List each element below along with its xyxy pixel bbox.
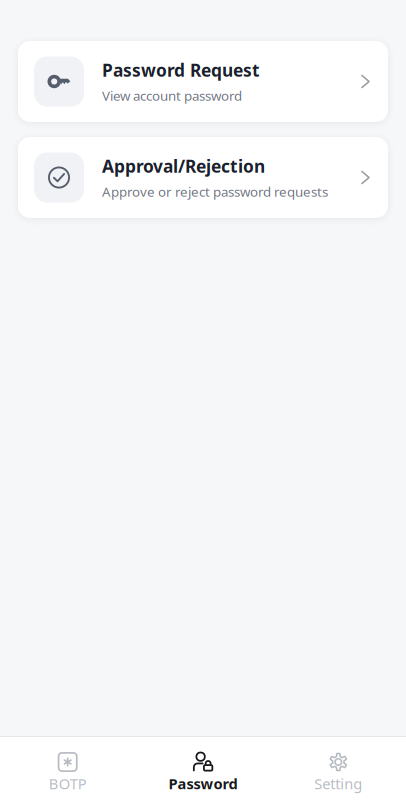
button[interactable]: Password: [135, 736, 271, 800]
staticText: Approve or reject password requests: [102, 183, 328, 200]
button[interactable]: Setting: [271, 736, 406, 800]
staticText: View account password: [102, 87, 242, 104]
staticText: Setting: [314, 774, 362, 793]
button[interactable]: Approval/Rejection: [18, 137, 388, 218]
staticText: BOTP: [49, 774, 87, 793]
button[interactable]: BOTP: [0, 736, 135, 800]
staticText: Password: [168, 774, 237, 793]
staticText: Approval/Rejection: [102, 155, 265, 178]
button[interactable]: Password Request: [18, 41, 388, 122]
staticText: Password Request: [102, 59, 260, 82]
